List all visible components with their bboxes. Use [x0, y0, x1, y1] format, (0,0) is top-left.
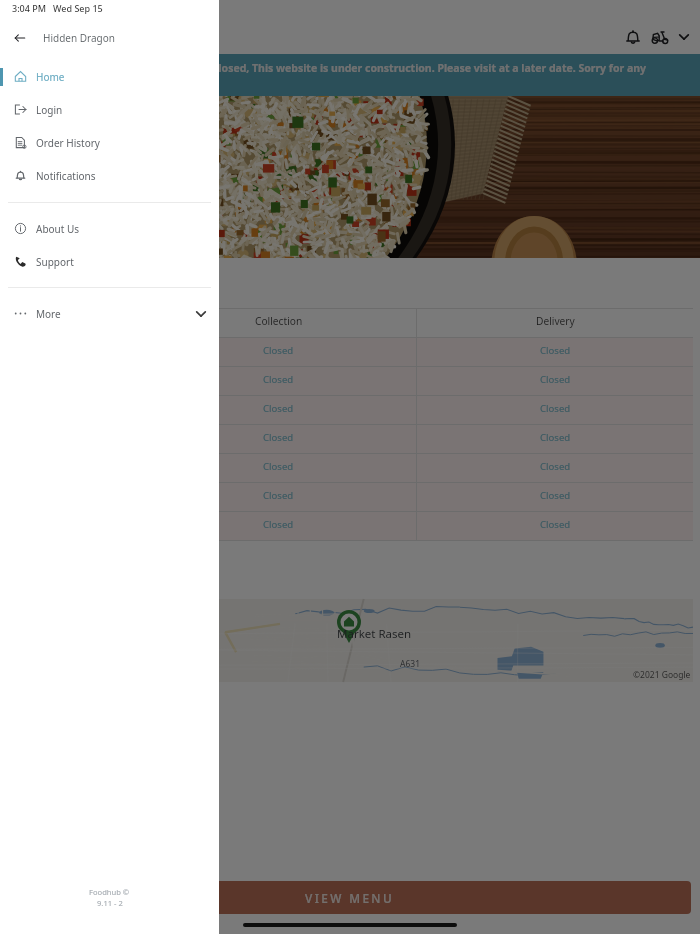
staticText: A631 — [400, 658, 421, 670]
staticText: Login — [36, 103, 63, 117]
button[interactable]: Home — [0, 60, 219, 93]
button[interactable]: Support — [0, 245, 219, 278]
button[interactable]: Back — [0, 16, 219, 60]
staticText: Closed — [263, 402, 294, 415]
staticText: Support — [36, 255, 74, 269]
button[interactable]: Notifications — [622, 26, 644, 48]
staticText: Delivery — [536, 314, 575, 328]
staticText: We are Closed, This website is under con… — [173, 61, 647, 75]
staticText: Closed — [263, 431, 294, 444]
button[interactable]: Delivery options — [650, 27, 670, 47]
staticText: 3:04 PM Wed Sep 15 — [12, 2, 103, 14]
staticText: About Us — [36, 222, 80, 236]
button[interactable]: More — [0, 297, 219, 330]
staticText: Closed — [540, 431, 571, 444]
other: Expand more — [192, 305, 210, 323]
staticText: Closed — [540, 373, 571, 386]
staticText: Closed — [263, 489, 294, 502]
staticText: Foodhub © — [89, 887, 130, 897]
button[interactable]: Order History — [0, 126, 219, 159]
staticText: Closed — [540, 344, 571, 357]
staticText: Market Rasen — [337, 626, 412, 642]
staticText: Home — [36, 70, 65, 84]
staticText: Closed — [263, 344, 294, 357]
button[interactable]: Notifications — [0, 159, 219, 192]
staticText: ©2021 Google — [633, 669, 691, 681]
staticText: Order History — [36, 136, 100, 150]
staticText: 9.11 - 2 — [97, 898, 123, 908]
staticText: Closed — [263, 373, 294, 386]
staticText: Closed — [263, 518, 294, 531]
staticText: VIEW MENU — [305, 890, 395, 906]
button[interactable]: VIEW MENU — [9, 881, 691, 914]
staticText: Hidden Dragon — [43, 31, 115, 45]
staticText: Closed — [540, 489, 571, 502]
staticText: Closed — [263, 460, 294, 473]
staticText: Collection — [255, 314, 303, 328]
staticText: Closed — [540, 518, 571, 531]
staticText: Notifications — [36, 169, 96, 183]
staticText: Closed — [540, 402, 571, 415]
button[interactable]: About Us — [0, 212, 219, 245]
button[interactable]: Expand — [675, 28, 693, 46]
button[interactable]: Login — [0, 93, 219, 126]
staticText: Closed — [540, 460, 571, 473]
other: Back — [13, 31, 27, 45]
staticText: More — [36, 307, 61, 321]
